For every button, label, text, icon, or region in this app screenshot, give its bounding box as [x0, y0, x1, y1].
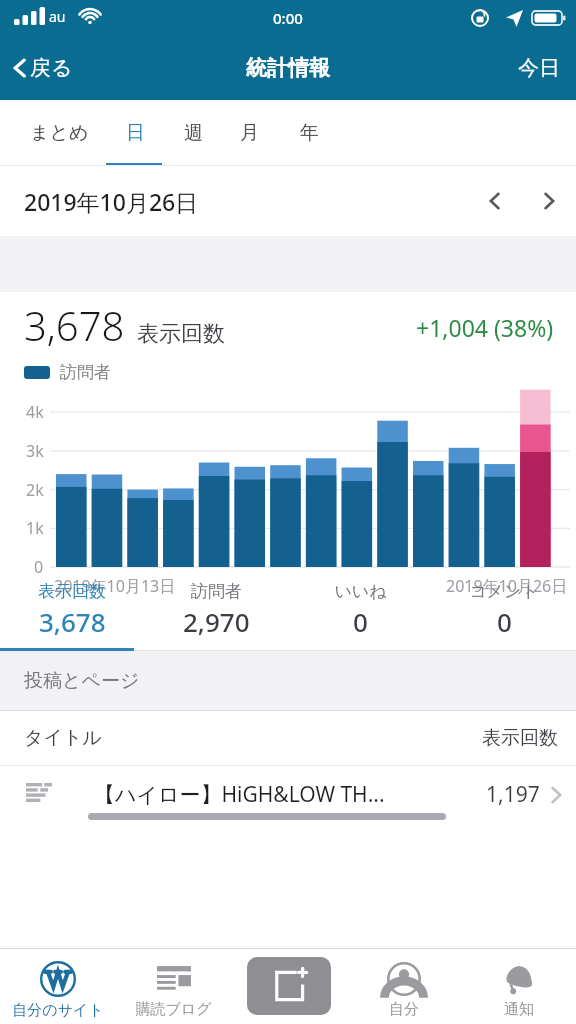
- button[interactable]: 今日: [502, 45, 576, 91]
- button[interactable]: 訪問者: [144, 581, 288, 651]
- staticText: 4k: [26, 401, 44, 423]
- staticText: タイトル: [24, 726, 102, 750]
- staticText: 統計情報: [246, 55, 330, 81]
- staticText: 表示回数: [137, 320, 225, 348]
- staticText: 購読ブログ: [135, 1000, 212, 1019]
- button[interactable]: 自分のサイト: [0, 948, 116, 1024]
- button[interactable]: Previous day: [468, 174, 522, 228]
- staticText: 月: [240, 121, 259, 145]
- staticText: 自分のサイト: [12, 1001, 104, 1020]
- staticText: 0: [34, 556, 44, 578]
- button[interactable]: コメント: [432, 581, 576, 651]
- staticText: 2019年10月26日: [446, 575, 568, 597]
- button[interactable]: 表示回数: [0, 581, 144, 651]
- staticText: 表示回数: [482, 726, 558, 750]
- staticText: 0: [353, 604, 368, 639]
- staticText: 3,678: [24, 298, 125, 352]
- staticText: 3,678: [39, 604, 106, 639]
- button[interactable]: Next day: [522, 174, 576, 228]
- button[interactable]: 月: [232, 100, 267, 166]
- staticText: 今日: [518, 55, 560, 81]
- staticText: 3k: [26, 440, 44, 462]
- button[interactable]: 自分: [346, 948, 461, 1024]
- staticText: 年: [300, 121, 319, 145]
- staticText: 【ハイロー】HiGH&LOW TH...: [94, 780, 385, 809]
- staticText: 日: [126, 121, 145, 145]
- button[interactable]: New post: [247, 957, 331, 1015]
- staticText: 表示回数: [38, 581, 106, 602]
- staticText: 戻る: [30, 55, 73, 81]
- staticText: いいね: [334, 581, 387, 602]
- staticText: 1k: [26, 517, 44, 539]
- staticText: +1,004 (38%): [416, 312, 554, 343]
- staticText: 1,197: [486, 780, 540, 809]
- staticText: 0:00: [273, 8, 303, 28]
- staticText: まとめ: [30, 121, 89, 145]
- staticText: 2019年10月13日: [54, 575, 176, 597]
- button[interactable]: 年: [292, 100, 327, 166]
- staticText: 通知: [504, 1000, 534, 1019]
- staticText: 2k: [26, 479, 44, 501]
- staticText: 週: [184, 121, 203, 145]
- staticText: 2019年10月26日: [24, 186, 199, 217]
- staticText: au: [49, 7, 66, 26]
- button[interactable]: 購読ブログ: [116, 948, 231, 1024]
- staticText: 訪問者: [191, 581, 242, 602]
- button[interactable]: 週: [176, 100, 211, 166]
- staticText: 自分: [389, 1000, 419, 1019]
- button[interactable]: まとめ: [22, 100, 97, 166]
- staticText: コメント: [469, 581, 539, 602]
- button[interactable]: 日: [118, 100, 153, 166]
- staticText: 2,970: [183, 604, 250, 639]
- button[interactable]: 通知: [461, 948, 576, 1024]
- staticText: 投稿とページ: [24, 669, 140, 693]
- staticText: 0: [497, 604, 512, 639]
- button[interactable]: いいね: [288, 581, 432, 651]
- button[interactable]: 戻る: [0, 47, 85, 89]
- button[interactable]: 【ハイロー】HiGH&LOW TH...: [0, 766, 576, 822]
- staticText: 訪問者: [60, 362, 111, 383]
